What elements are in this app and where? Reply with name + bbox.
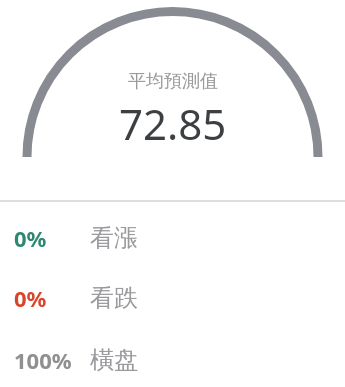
staticText: 橫盘 xyxy=(90,345,138,375)
button[interactable]: 0% xyxy=(0,281,345,315)
staticText: 0% xyxy=(14,283,47,313)
staticText: 看漲 xyxy=(90,223,138,253)
button[interactable]: 0% xyxy=(0,221,345,255)
staticText: 72.85 xyxy=(119,95,227,152)
staticText: 看跌 xyxy=(90,283,138,313)
other: 平均預測值 72.85 xyxy=(0,0,345,201)
staticText: 100% xyxy=(14,345,72,375)
staticText: 平均預測值 xyxy=(128,70,218,93)
button[interactable]: 100% xyxy=(0,343,345,377)
staticText: 0% xyxy=(14,223,47,253)
